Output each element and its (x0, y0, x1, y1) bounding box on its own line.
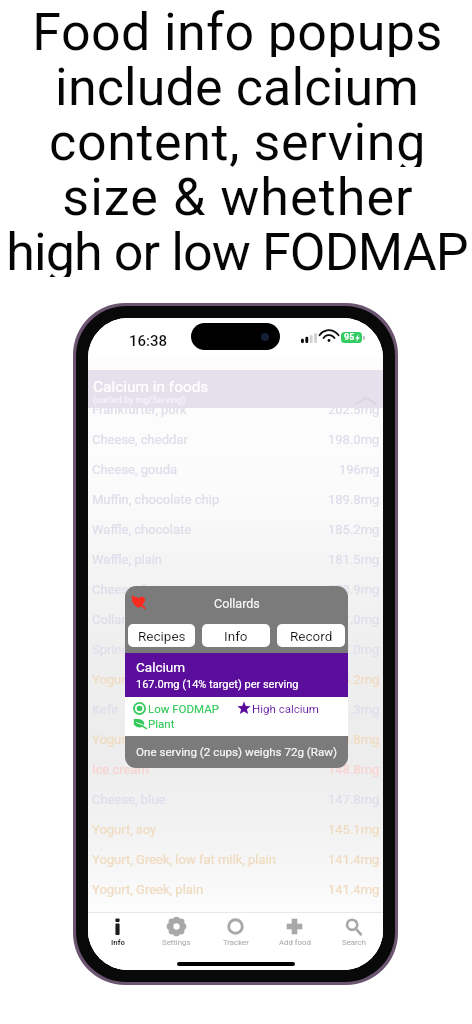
staticText: 196mg (339, 462, 380, 477)
staticText: Muffin, chocolate chip (92, 492, 220, 507)
button[interactable]: Search (324, 913, 383, 957)
button[interactable]: Tracker (206, 913, 265, 957)
staticText: Calcium in foods (93, 378, 209, 396)
staticText: Frankfurter, pork (92, 402, 187, 417)
staticText: 151.3mg (328, 702, 380, 717)
button[interactable]: Ice cream (88, 754, 383, 784)
staticText: 167.0mg (328, 642, 380, 657)
staticText: Yogurt, plain (92, 672, 164, 687)
staticText: include calcium (55, 57, 419, 112)
staticText: 181.5mg (328, 552, 380, 567)
staticText: Collards (214, 596, 260, 611)
button[interactable]: Cheese, gouda (88, 454, 383, 484)
staticText: Cheese, gouda (92, 462, 178, 477)
button[interactable]: Cheese, blue (88, 784, 383, 814)
staticText: high or low FODMAP (6, 222, 468, 277)
staticText: content, serving (49, 112, 426, 167)
staticText: 167.0mg (328, 612, 380, 627)
button[interactable]: Info (88, 913, 147, 957)
staticText: Low FODMAP (148, 702, 219, 715)
staticText: Calcium (136, 659, 186, 675)
staticText: Settings (162, 938, 191, 947)
staticText: 148.8mg (328, 732, 380, 747)
staticText: 189.8mg (328, 492, 380, 507)
staticText: One serving (2 cups) weighs 72g (Raw) (136, 745, 338, 759)
staticText: Plant (148, 717, 175, 730)
staticText: Food info popups (32, 2, 443, 57)
staticText: 145.1mg (328, 822, 380, 837)
staticText: Yogurt, soy (92, 822, 157, 837)
staticText: Waffle, chocolate (92, 522, 192, 537)
staticText: Add food (279, 938, 311, 947)
staticText: Cheese, cheddar (92, 432, 188, 447)
staticText: Yogurt, vanilla (92, 732, 174, 747)
staticText: High calcium (252, 702, 319, 715)
button[interactable]: Waffle, plain (88, 544, 383, 574)
other: Remove from favourites (132, 596, 145, 608)
button[interactable]: Frankfurter, pork (88, 394, 383, 424)
button[interactable]: Add food (265, 913, 324, 957)
staticText: 16:38 (129, 332, 168, 350)
staticText: Info (111, 938, 125, 947)
button[interactable]: Cheese, cheddar (88, 424, 383, 454)
staticText: 185.2mg (328, 522, 380, 537)
staticText: 202.5mg (328, 402, 380, 417)
button[interactable]: Yogurt, plain (88, 664, 383, 694)
button[interactable]: Yogurt, vanilla (88, 724, 383, 754)
staticText: 178.9mg (328, 582, 380, 597)
button[interactable]: Calcium in foods (88, 370, 383, 408)
button[interactable]: Recipes (128, 624, 195, 647)
staticText: 148.8mg (328, 762, 380, 777)
staticText: 141.4mg (328, 852, 380, 867)
button[interactable]: Settings (147, 913, 206, 957)
button[interactable]: Muffin, chocolate chip (88, 484, 383, 514)
button[interactable]: Yogurt, Greek, low fat milk, plain (88, 844, 383, 874)
button[interactable]: Yogurt, soy (88, 814, 383, 844)
button[interactable]: Record (277, 624, 345, 647)
staticText: 95 (344, 332, 355, 343)
staticText: 147.8mg (328, 792, 380, 807)
other: Collapse (355, 395, 377, 405)
button[interactable]: Spring greens (88, 634, 383, 664)
staticText: 156.2mg (328, 672, 380, 687)
button[interactable]: Collards (88, 604, 383, 634)
button[interactable]: Cheese, feta (88, 574, 383, 604)
staticText: Collards (92, 612, 140, 627)
staticText: Cheese, feta (92, 582, 164, 597)
staticText: Search (342, 938, 366, 947)
staticText: Spring greens (92, 642, 172, 657)
staticText: (sorted by mg/Serving) (93, 395, 186, 406)
staticText: 167.0mg (14% target) per serving (136, 678, 299, 691)
staticText: Kefir (92, 702, 119, 717)
staticText: Yogurt, Greek, low fat milk, plain (92, 852, 276, 867)
staticText: Info (224, 628, 248, 644)
staticText: Tracker (223, 938, 249, 947)
staticText: Record (290, 628, 333, 644)
button[interactable]: Kefir (88, 694, 383, 724)
button[interactable]: Waffle, chocolate (88, 514, 383, 544)
staticText: Ice cream (92, 762, 149, 777)
staticText: 141.4mg (328, 882, 380, 897)
button[interactable]: Yogurt, Greek, plain (88, 874, 383, 904)
staticText: Yogurt, Greek, plain (92, 882, 204, 897)
staticText: Waffle, plain (92, 552, 163, 567)
staticText: Recipes (138, 628, 186, 644)
button[interactable]: Info (202, 624, 270, 647)
staticText: 198.0mg (328, 432, 380, 447)
staticText: size & whether (62, 167, 414, 222)
staticText: Cheese, blue (92, 792, 166, 807)
